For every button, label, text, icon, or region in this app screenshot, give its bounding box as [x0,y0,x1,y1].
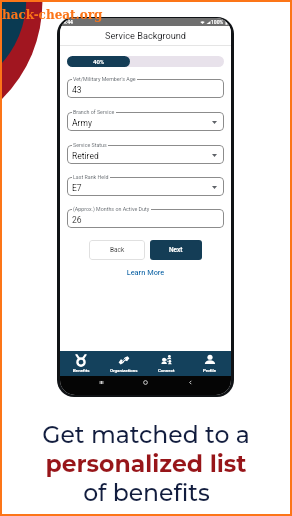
staticText: E7 [72,183,82,193]
staticText: Profile [203,368,217,373]
button[interactable]: Vet/Military Member's Age [67,79,224,98]
button[interactable]: Back [89,240,145,260]
button[interactable]: Organizations [102,351,145,376]
button[interactable]: Learn More [60,268,231,277]
button[interactable]: Benefits [60,351,102,376]
staticText: Organizations [110,368,138,373]
staticText: 26 [72,215,82,225]
staticText: personalized list [45,449,247,478]
staticText: Vet/Military Member's Age [73,76,136,82]
button[interactable]: Last Rank Held [67,177,224,196]
button[interactable]: Next [150,240,202,260]
staticText: Get matched to a [42,420,250,449]
staticText: Army [72,118,92,128]
staticText: Back [110,246,125,254]
staticText: 100% [211,19,224,25]
staticText: (Approx.) Months on Active Duty [73,206,150,212]
button[interactable]: Home [142,379,149,386]
staticText: of benefits [83,478,210,507]
staticText: 40% [93,58,105,65]
button[interactable]: (Approx.) Months on Active Duty [67,209,224,228]
staticText: 43 [72,85,82,95]
staticText: Next [169,246,183,254]
staticText: 4:44 [63,19,73,25]
staticText: Service Background [105,30,187,41]
staticText: Branch of Service [73,109,115,115]
staticText: Retired [72,151,99,161]
staticText: Connect [158,368,175,373]
staticText: Service Status [73,142,107,148]
button[interactable]: Profile [188,351,231,376]
staticText: Last Rank Held [73,174,109,180]
button[interactable]: Service Status [67,145,224,164]
button[interactable]: Branch of Service [67,112,224,131]
staticText: hack-cheat.org [2,8,103,22]
button[interactable]: Recents [98,379,105,386]
button[interactable]: Back [187,379,194,386]
button[interactable]: Connect [145,351,188,376]
staticText: Benefits [73,368,90,373]
